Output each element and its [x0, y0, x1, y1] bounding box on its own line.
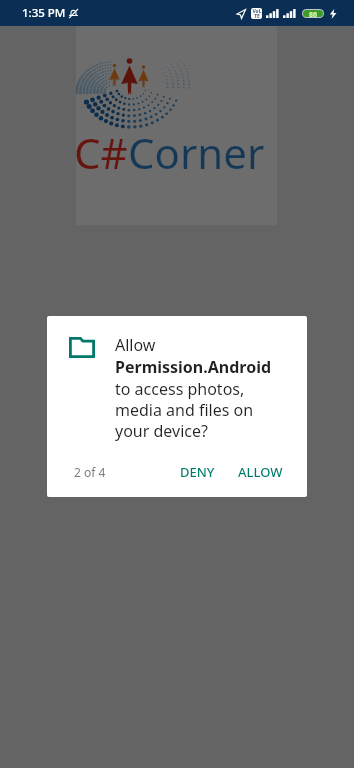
staticText: Corner — [128, 124, 265, 181]
staticText: Allow — [115, 334, 156, 356]
staticText: VoL TE — [252, 8, 262, 19]
staticText: 86 — [309, 10, 318, 17]
button[interactable]: ALLOW — [230, 456, 291, 488]
staticText: 1:35 PM — [22, 5, 66, 21]
staticText: DENY — [180, 463, 215, 481]
staticText: C# — [74, 124, 128, 181]
staticText: Permission.Android — [115, 356, 272, 378]
staticText: 2 of 4 — [74, 464, 106, 480]
staticText: to access photos, media and files on you… — [115, 378, 254, 442]
staticText: ALLOW — [238, 463, 283, 481]
button[interactable]: DENY — [172, 456, 223, 488]
